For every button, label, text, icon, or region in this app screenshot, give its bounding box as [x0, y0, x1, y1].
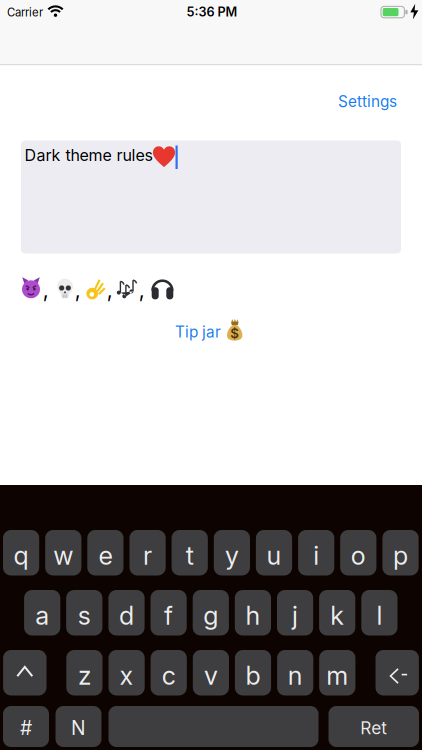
staticText: o: [351, 540, 366, 571]
staticText: #: [20, 716, 32, 740]
button[interactable]: i: [298, 530, 334, 575]
button[interactable]: b: [235, 650, 271, 695]
staticText: d: [119, 600, 134, 631]
staticText: Carrier: [7, 6, 43, 19]
staticText: e: [98, 540, 112, 571]
staticText: 5:36 PM: [186, 4, 237, 20]
button[interactable]: a: [24, 590, 60, 635]
staticText: t: [186, 540, 194, 571]
button[interactable]: Next keyboard: [55, 706, 101, 747]
button[interactable]: n: [277, 650, 313, 695]
staticText: N: [71, 716, 86, 740]
button[interactable]: m: [319, 650, 355, 695]
button[interactable]: y: [214, 530, 250, 575]
button[interactable]: d: [108, 590, 145, 635]
button[interactable]: x: [108, 650, 145, 695]
staticText: k: [330, 600, 344, 631]
staticText: ,: [43, 277, 49, 302]
staticText: i: [313, 540, 319, 571]
button[interactable]: h: [235, 590, 271, 635]
button[interactable]: u: [256, 530, 292, 575]
staticText: u: [266, 540, 281, 571]
staticText: Ret: [360, 717, 387, 738]
staticText: c: [162, 660, 176, 691]
staticText: n: [288, 660, 303, 691]
staticText: q: [14, 540, 29, 571]
button[interactable]: l: [361, 590, 397, 635]
button[interactable]: c: [151, 650, 187, 695]
staticText: Dark theme rules: [24, 145, 152, 165]
staticText: Settings: [338, 92, 397, 111]
staticText: Tip jar: [175, 323, 221, 341]
button[interactable]: j: [277, 590, 313, 635]
staticText: w: [53, 540, 73, 571]
button[interactable]: q: [3, 530, 39, 575]
button[interactable]: k: [319, 590, 355, 635]
staticText: ,: [75, 277, 81, 302]
button[interactable]: t: [172, 530, 208, 575]
button[interactable]: Shift: [3, 650, 46, 695]
staticText: z: [78, 660, 91, 691]
staticText: $: [230, 325, 239, 341]
staticText: y: [225, 540, 239, 571]
button[interactable]: z: [66, 650, 102, 695]
button[interactable]: Ret: [328, 706, 419, 747]
button[interactable]: Settings: [338, 92, 397, 111]
staticText: h: [245, 600, 260, 631]
button[interactable]: Delete: [375, 650, 419, 695]
staticText: m: [326, 660, 348, 691]
staticText: p: [393, 540, 408, 571]
button[interactable]: Space: [108, 706, 318, 747]
staticText: ,: [107, 277, 113, 302]
staticText: j: [292, 600, 298, 631]
staticText: a: [35, 600, 49, 631]
button[interactable]: r: [129, 530, 166, 575]
staticText: f: [164, 600, 173, 631]
button[interactable]: p: [382, 530, 419, 575]
button[interactable]: s: [66, 590, 102, 635]
button[interactable]: o: [340, 530, 376, 575]
staticText: b: [245, 660, 260, 691]
staticText: ,: [139, 277, 145, 302]
button[interactable]: e: [87, 530, 123, 575]
button[interactable]: #: [3, 706, 49, 747]
button[interactable]: Text input: [21, 140, 401, 253]
staticText: g: [203, 600, 218, 631]
staticText: x: [120, 660, 134, 691]
button[interactable]: f: [150, 590, 187, 635]
button[interactable]: g: [193, 590, 229, 635]
button[interactable]: w: [45, 530, 81, 575]
staticText: l: [376, 600, 382, 631]
staticText: r: [143, 540, 152, 571]
button[interactable]: v: [193, 650, 229, 695]
staticText: v: [204, 660, 218, 691]
button[interactable]: Tip jar: [175, 320, 243, 344]
staticText: s: [78, 600, 91, 631]
